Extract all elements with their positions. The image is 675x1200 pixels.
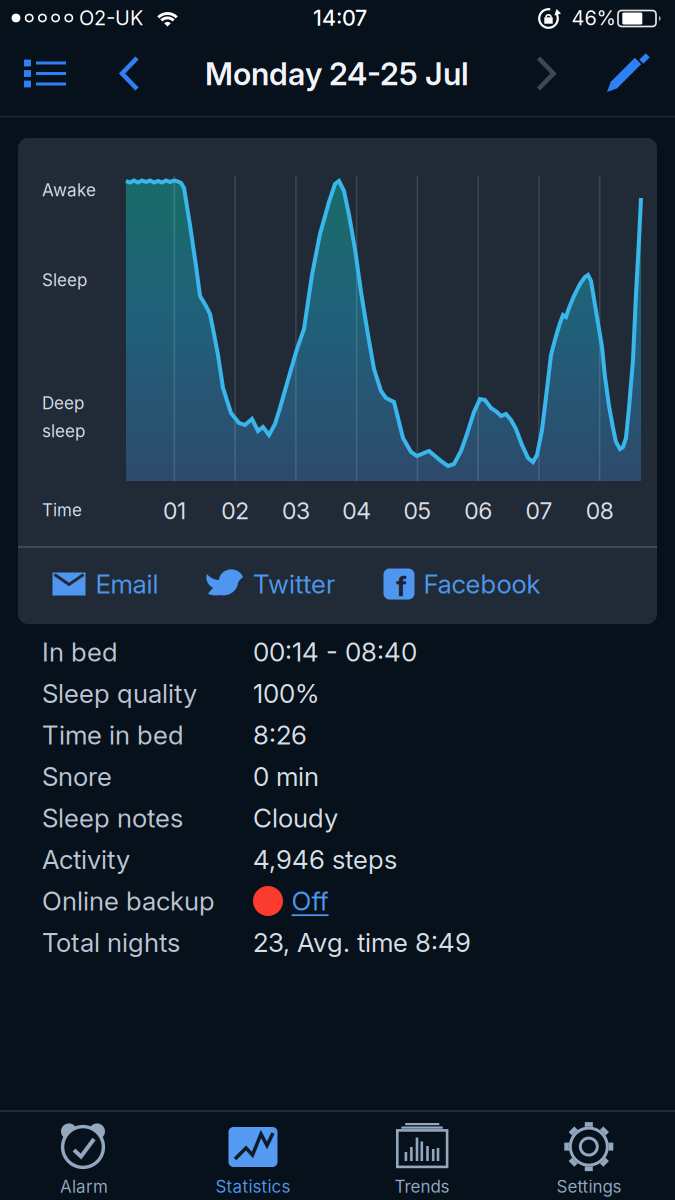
staticText: Awake — [42, 180, 96, 200]
button[interactable]: Edit night — [602, 48, 654, 100]
staticText: Deep — [42, 393, 84, 413]
staticText: 01 — [163, 497, 186, 525]
button[interactable]: Previous night — [107, 48, 151, 98]
button[interactable]: Settings — [551, 1109, 627, 1197]
staticText: 04 — [342, 497, 371, 525]
staticText: Settings — [556, 1176, 621, 1197]
staticText: 02 — [221, 497, 249, 525]
staticText: 08 — [586, 497, 614, 525]
staticText: Total nights — [42, 927, 180, 958]
staticText: 0 min — [253, 761, 319, 792]
staticText: Alarm — [60, 1176, 108, 1197]
button[interactable]: Off — [292, 879, 356, 923]
staticText: Facebook — [423, 568, 540, 600]
button[interactable]: Next night — [524, 48, 568, 98]
staticText: In bed — [42, 636, 118, 668]
button[interactable]: f — [383, 556, 540, 612]
staticText: 00:14 - 08:40 — [253, 636, 417, 668]
staticText: O2-UK — [79, 6, 143, 30]
staticText: Twitter — [253, 568, 335, 600]
button[interactable]: Nights list — [16, 48, 74, 98]
staticText: Off — [292, 885, 329, 917]
staticText: Trends — [394, 1176, 449, 1197]
staticText: Activity — [42, 844, 130, 875]
staticText: 4,946 steps — [253, 844, 397, 875]
staticText: Sleep quality — [42, 678, 197, 709]
staticText: Snore — [42, 761, 112, 792]
staticText: 07 — [525, 497, 552, 525]
button[interactable]: Twitter — [205, 556, 335, 612]
staticText: 14:07 — [313, 5, 367, 31]
staticText: Cloudy — [253, 802, 338, 834]
staticText: f — [396, 569, 407, 603]
staticText: Time — [42, 500, 82, 520]
staticText: 100% — [253, 678, 319, 709]
button[interactable]: Alarm — [48, 1109, 120, 1197]
staticText: Email — [95, 568, 158, 600]
staticText: Online backup — [42, 885, 215, 917]
staticText: Sleep notes — [42, 802, 183, 834]
staticText: 06 — [464, 497, 492, 525]
staticText: sleep — [42, 421, 85, 441]
staticText: 46% — [571, 6, 615, 30]
button[interactable]: Trends — [381, 1109, 461, 1197]
button[interactable]: Email — [51, 556, 158, 612]
staticText: Time in bed — [42, 719, 184, 751]
staticText: 23, Avg. time 8:49 — [253, 927, 471, 958]
staticText: Statistics — [215, 1176, 290, 1197]
staticText: 03 — [282, 497, 310, 525]
staticText: 05 — [403, 497, 431, 525]
button[interactable]: Statistics — [198, 1109, 308, 1197]
staticText: Sleep — [42, 270, 87, 290]
staticText: Monday 24-25 Jul — [205, 55, 469, 93]
staticText: 8:26 — [253, 719, 307, 751]
